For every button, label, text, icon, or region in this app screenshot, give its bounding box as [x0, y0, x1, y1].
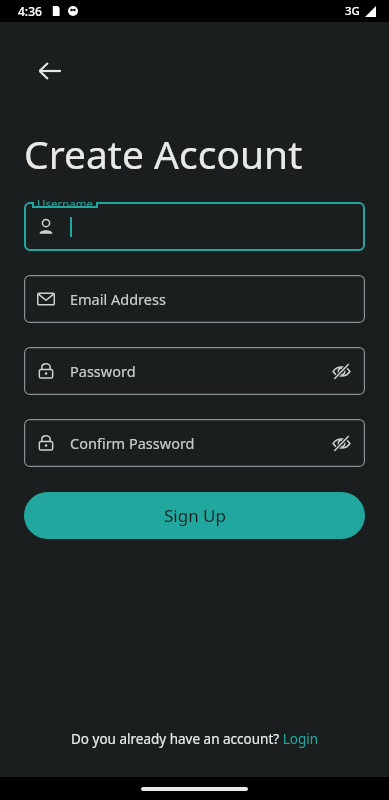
button[interactable]: Email Address: [24, 275, 365, 323]
button[interactable]: Back: [30, 51, 70, 91]
button[interactable]: Do you already have an account? Login: [71, 730, 319, 748]
staticText: Username: [37, 196, 93, 212]
staticText: Confirm Password: [70, 433, 195, 453]
staticText: Email Address: [70, 289, 166, 309]
button[interactable]: Toggle password visibility: [321, 351, 361, 391]
button[interactable]: Confirm Password: [24, 419, 365, 467]
staticText: Password: [70, 361, 136, 381]
button[interactable]: Sign Up: [24, 492, 365, 539]
staticText: Do you already have an account? Login: [71, 730, 319, 748]
staticText: 4:36: [18, 3, 42, 19]
button[interactable]: Toggle password visibility: [321, 423, 361, 463]
staticText: 3G: [345, 3, 360, 19]
button[interactable]: Username: [24, 195, 365, 251]
staticText: Sign Up: [164, 504, 226, 527]
button[interactable]: Password: [24, 347, 365, 395]
staticText: Create Account: [24, 127, 303, 180]
